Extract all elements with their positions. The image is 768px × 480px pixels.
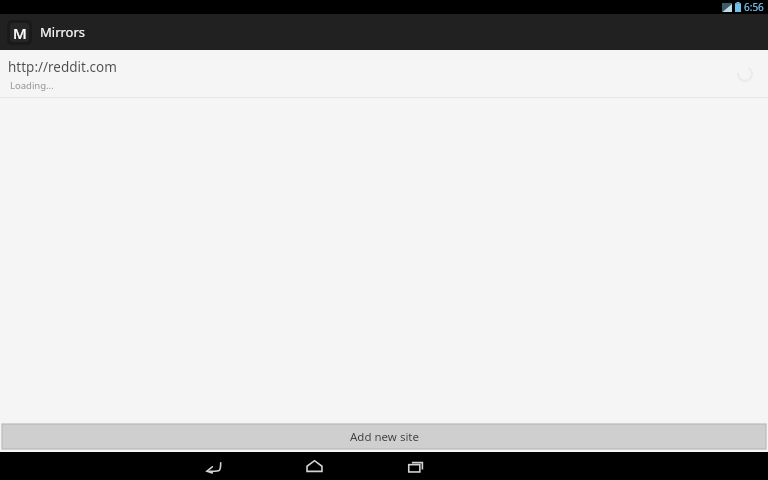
staticText: M [13, 23, 27, 42]
staticText: http://reddit.com [8, 58, 117, 76]
button[interactable]: App icon [7, 20, 32, 45]
button[interactable]: Recent apps [395, 452, 435, 480]
button[interactable]: Add new site [2, 424, 766, 449]
button[interactable]: Back [193, 452, 233, 480]
button[interactable]: Home [294, 452, 334, 480]
staticText: Loading... [10, 79, 54, 92]
button[interactable]: http://reddit.com [0, 50, 768, 98]
staticText: 6:56 [744, 0, 764, 14]
staticText: Mirrors [40, 23, 86, 41]
staticText: Add new site [350, 429, 419, 445]
